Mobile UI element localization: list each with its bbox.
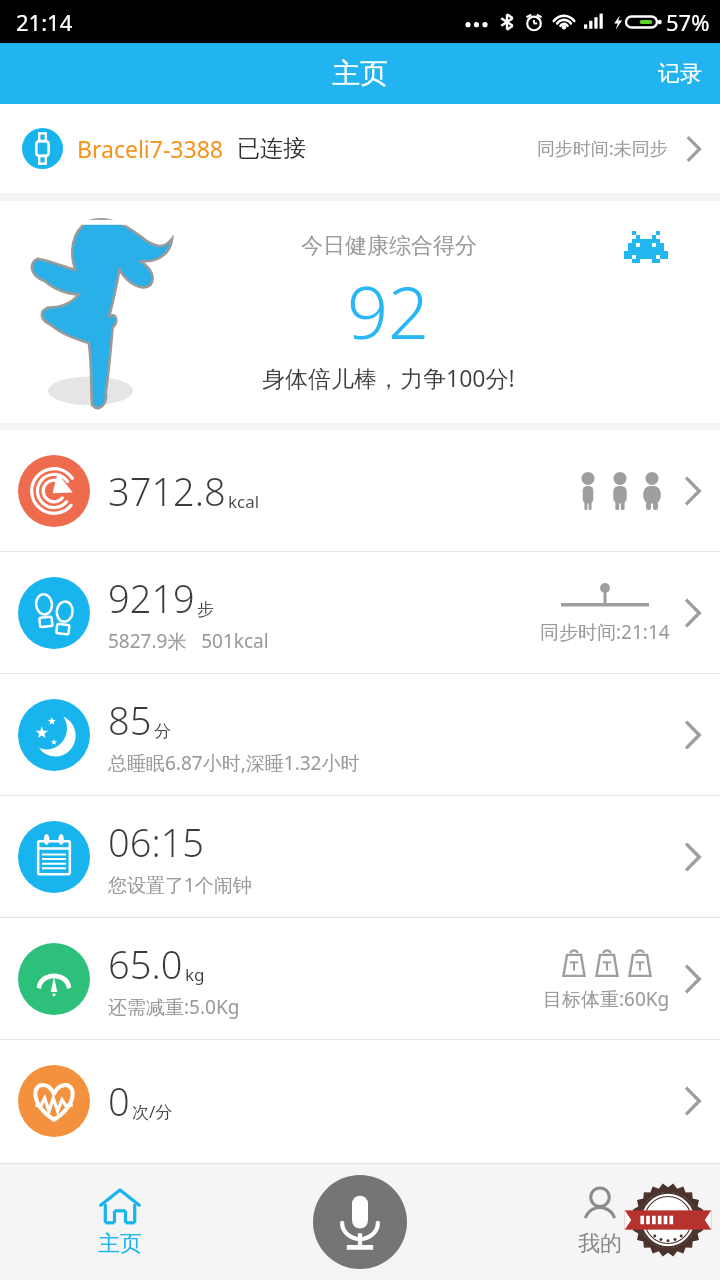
staticText: 同步时间:未同步 xyxy=(537,136,668,161)
staticText: 92 xyxy=(347,262,430,360)
staticText: 5827.9米 501kcal xyxy=(108,628,269,654)
staticText: 65.0 xyxy=(108,938,183,990)
staticText: 身体倍儿棒，力争100分! xyxy=(262,362,515,393)
button[interactable]: 85 xyxy=(0,674,720,795)
button[interactable]: 9219 xyxy=(0,552,720,673)
staticText: 步 xyxy=(197,599,214,620)
button[interactable]: 主页 xyxy=(0,1163,240,1280)
staticText: kcal xyxy=(228,490,260,513)
staticText: 还需减重:5.0Kg xyxy=(108,994,240,1020)
staticText: Braceli7-3388 xyxy=(77,133,223,164)
staticText: 主页 xyxy=(98,1230,142,1258)
button[interactable]: 06:15 xyxy=(0,796,720,917)
button[interactable]: 65.0 xyxy=(0,918,720,1039)
button[interactable]: 记录 xyxy=(640,50,720,98)
staticText: 次/分 xyxy=(132,1100,173,1123)
button[interactable]: 0 xyxy=(0,1040,720,1161)
staticText: 同步时间:21:14 xyxy=(540,619,670,645)
staticText: kg xyxy=(185,963,205,986)
staticText: 3712.8 xyxy=(108,465,226,517)
staticText: 记录 xyxy=(658,60,702,88)
staticText: 今日健康综合得分 xyxy=(301,232,477,260)
staticText: 我的 xyxy=(578,1230,622,1258)
staticText: 85 xyxy=(108,694,152,746)
staticText: 06:15 xyxy=(108,816,205,868)
button[interactable]: Braceli7-3388 xyxy=(0,104,720,193)
staticText: 9219 xyxy=(108,572,195,624)
staticText: 分 xyxy=(154,721,171,742)
button[interactable]: Voice input xyxy=(313,1175,407,1269)
button[interactable]: 今日健康综合得分 xyxy=(0,201,720,423)
staticText: 您设置了1个闹钟 xyxy=(108,872,252,898)
staticText: 目标体重:60Kg xyxy=(543,986,670,1012)
staticText: 主页 xyxy=(332,56,388,91)
button[interactable]: 3712.8 xyxy=(0,430,720,551)
staticText: 总睡眠6.87小时,深睡1.32小时 xyxy=(108,750,360,776)
staticText: 57% xyxy=(666,7,710,37)
staticText: 已连接 xyxy=(237,134,306,163)
button[interactable]: 我的 xyxy=(480,1163,720,1280)
staticText: 21:14 xyxy=(16,7,73,37)
staticText: 0 xyxy=(108,1075,130,1127)
